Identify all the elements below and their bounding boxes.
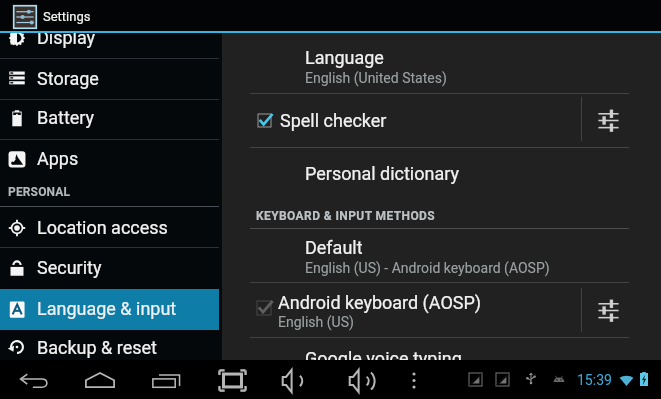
button[interactable]: Location access — [0, 207, 219, 248]
staticText: Language — [305, 47, 384, 68]
button[interactable]: Language — [222, 33, 661, 93]
button[interactable]: Personal dictionary — [222, 148, 661, 200]
staticText: Storage — [37, 68, 99, 89]
staticText: English (US) - Android keyboard (AOSP) — [305, 260, 550, 276]
staticText: Default — [305, 237, 363, 258]
staticText: PERSONAL — [8, 185, 71, 199]
button[interactable]: Backup & reset — [0, 331, 219, 360]
button[interactable]: Google voice typing — [222, 338, 661, 360]
staticText: Google voice typing — [305, 348, 462, 360]
button[interactable]: Language & input — [0, 289, 219, 330]
staticText: Settings — [43, 9, 91, 24]
button[interactable]: Battery — [0, 100, 219, 139]
staticText: Language & input — [37, 298, 177, 319]
button[interactable]: Spell checker settings — [584, 95, 632, 146]
staticText: Backup & reset — [37, 337, 157, 358]
button[interactable]: Security — [0, 248, 219, 288]
button[interactable]: Back — [8, 361, 60, 399]
button[interactable]: Android keyboard settings — [584, 285, 632, 336]
button[interactable]: Apps — [0, 140, 219, 181]
button[interactable]: Home — [74, 360, 126, 399]
staticText: Apps — [37, 148, 79, 169]
button[interactable]: More options — [388, 361, 440, 399]
button[interactable]: Volume up — [336, 361, 388, 399]
button[interactable]: Volume down — [268, 361, 320, 399]
button[interactable]: Settings — [0, 0, 140, 31]
button[interactable]: Recent apps — [140, 361, 192, 399]
staticText: Location access — [37, 217, 168, 238]
staticText: Battery — [37, 107, 95, 128]
button[interactable]: Screenshot — [206, 361, 258, 399]
staticText: Spell checker — [280, 110, 387, 131]
staticText: English (United States) — [305, 70, 447, 86]
staticText: Security — [37, 257, 102, 278]
staticText: 15:39 — [577, 372, 612, 388]
staticText: Personal dictionary — [305, 163, 460, 184]
button[interactable]: Android keyboard (AOSP) — [222, 283, 661, 337]
staticText: English (US) — [278, 314, 354, 330]
button[interactable]: Storage — [0, 59, 219, 99]
button[interactable]: Default — [222, 229, 661, 282]
button[interactable]: Spell checker — [222, 94, 661, 147]
staticText: Android keyboard (AOSP) — [278, 292, 482, 313]
staticText: KEYBOARD & INPUT METHODS — [256, 209, 436, 223]
staticText: Display — [37, 33, 96, 48]
button[interactable]: Display — [0, 33, 219, 58]
